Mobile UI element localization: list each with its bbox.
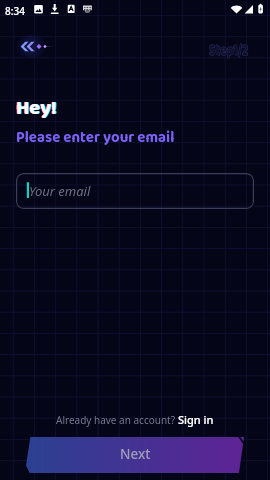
staticText: Please enter your email [16, 126, 175, 152]
staticText: Hey! [15, 92, 56, 126]
button[interactable]: Your email [16, 173, 254, 209]
staticText: Already have an account? [56, 413, 178, 427]
staticText: Hey! [17, 92, 58, 126]
staticText: Step1/2 [209, 39, 249, 65]
button[interactable]: Back [20, 38, 54, 55]
staticText: Hey! [16, 92, 57, 126]
staticText: Your email [29, 182, 91, 200]
staticText: 8:34 [5, 4, 25, 18]
staticText: Next [120, 445, 151, 463]
staticText: Step1/2 [209, 39, 249, 65]
button[interactable]: Next [26, 437, 244, 473]
staticText: Sign in [178, 412, 214, 427]
button[interactable]: Sign in [178, 412, 214, 427]
